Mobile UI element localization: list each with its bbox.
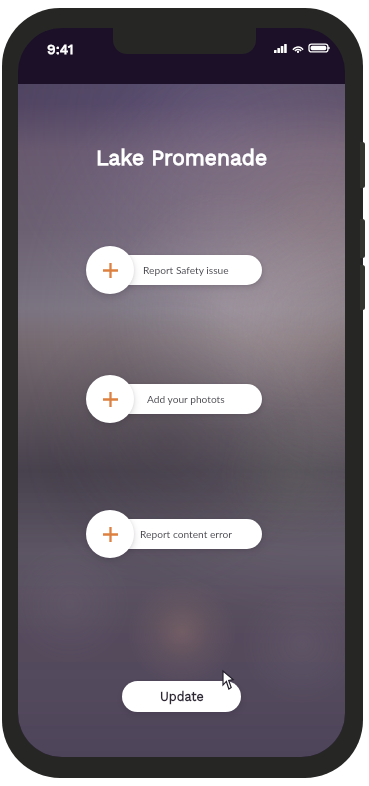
staticText: Report Safety issue bbox=[143, 264, 229, 276]
staticText: Report content error bbox=[140, 528, 232, 540]
button[interactable]: Report Safety issue bbox=[86, 246, 134, 294]
staticText: Add your photots bbox=[147, 393, 225, 405]
button[interactable]: Add your photots bbox=[110, 384, 262, 414]
button[interactable]: Report Safety issue bbox=[110, 255, 262, 285]
staticText: Update bbox=[160, 689, 204, 704]
button[interactable]: Report content error bbox=[110, 519, 262, 549]
button[interactable]: Update bbox=[122, 681, 241, 712]
button[interactable]: Add your photots bbox=[86, 375, 134, 423]
staticText: Lake Promenade bbox=[18, 145, 345, 170]
staticText: 9:41 bbox=[47, 41, 74, 57]
button[interactable]: Report content error bbox=[86, 510, 134, 558]
